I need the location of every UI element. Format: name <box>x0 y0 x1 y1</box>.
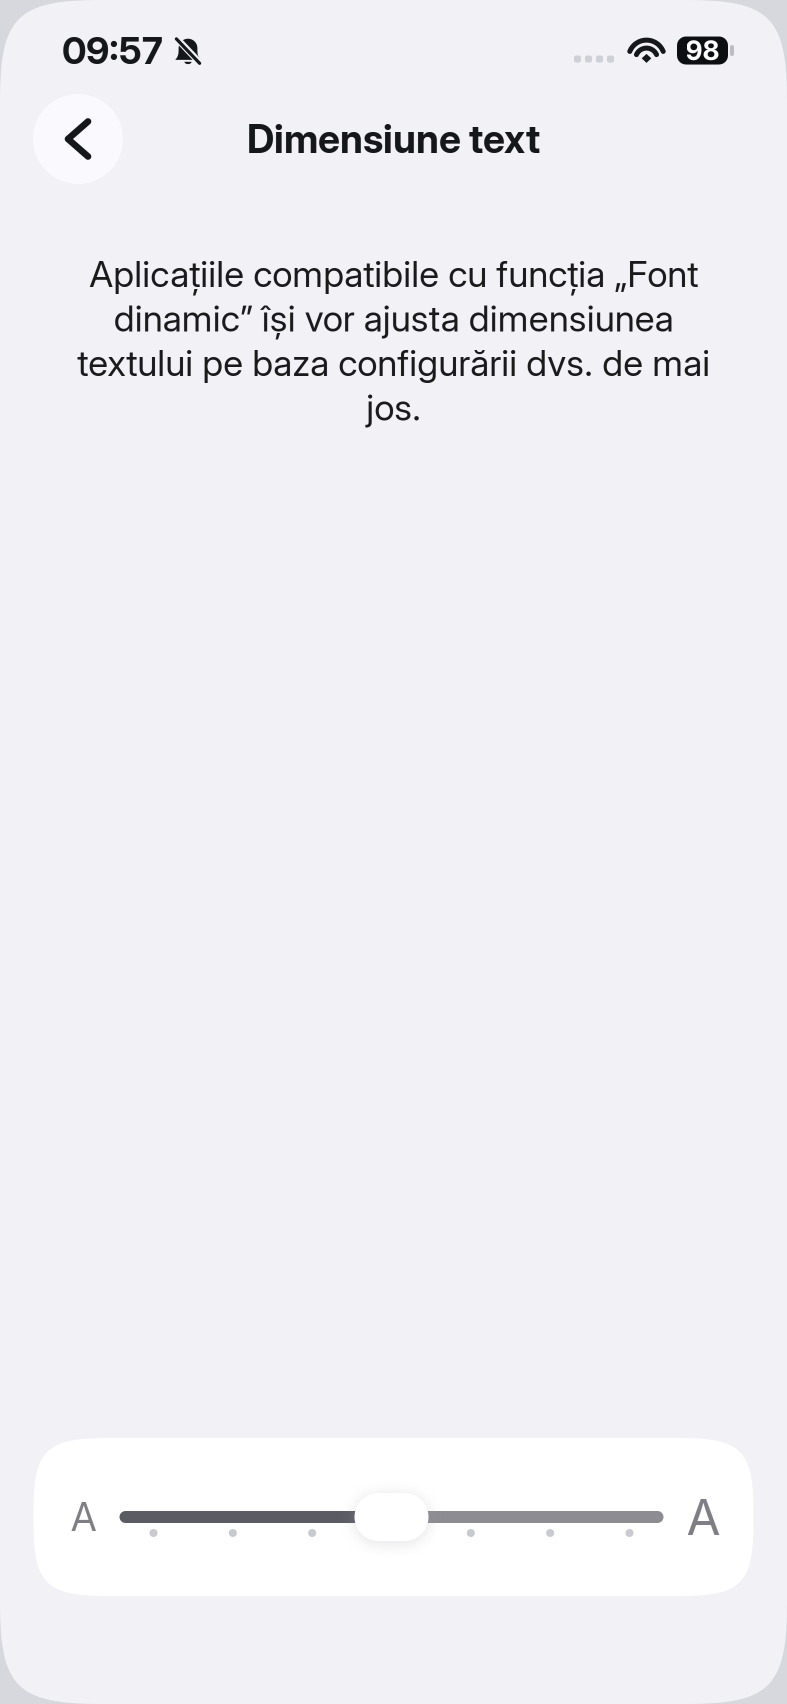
button[interactable]: Back <box>33 94 123 184</box>
staticText: jos. <box>366 386 421 429</box>
staticText: 09:57 <box>62 28 163 73</box>
staticText: textului pe baza configurării dvs. de ma… <box>77 341 710 385</box>
staticText: Dimensiune text <box>247 116 540 162</box>
staticText: dinamic” își vor ajusta dimensiunea <box>113 297 673 340</box>
staticText: A <box>686 1487 720 1547</box>
staticText: Aplicațiile compatibile cu funcția „Font <box>89 252 698 296</box>
staticText: 98 <box>685 34 719 67</box>
staticText: A <box>71 1494 96 1540</box>
button[interactable]: Text size <box>354 1493 428 1541</box>
